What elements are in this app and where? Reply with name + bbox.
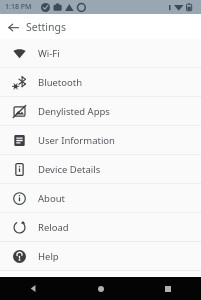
- staticText: Bluetooth: [38, 76, 83, 89]
- staticText: Help: [38, 250, 59, 263]
- button[interactable]: Denylisted Apps: [0, 97, 201, 125]
- staticText: Device Details: [38, 163, 101, 176]
- staticText: Denylisted Apps: [38, 105, 110, 118]
- button[interactable]: Bluetooth: [0, 68, 201, 96]
- staticText: User Information: [38, 134, 115, 147]
- button[interactable]: Back: [3, 17, 23, 37]
- staticText: About: [38, 192, 65, 205]
- staticText: Settings: [26, 20, 66, 34]
- button[interactable]: User Information: [0, 126, 201, 154]
- staticText: Reload: [38, 221, 69, 234]
- button[interactable]: Recent apps: [134, 277, 201, 300]
- button[interactable]: Home: [67, 277, 134, 300]
- button[interactable]: Help: [0, 242, 201, 270]
- button[interactable]: About: [0, 184, 201, 212]
- button[interactable]: Back: [0, 277, 67, 300]
- button[interactable]: Device Details: [0, 155, 201, 183]
- button[interactable]: Reload: [0, 213, 201, 241]
- button[interactable]: Wi-Fi: [0, 39, 201, 67]
- staticText: Wi-Fi: [38, 47, 60, 60]
- staticText: 1:18 PM: [5, 2, 32, 12]
